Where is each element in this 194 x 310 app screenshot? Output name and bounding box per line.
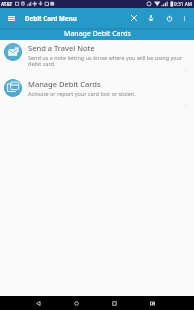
button[interactable]: Split screen: [145, 296, 159, 310]
staticText: Manage Debit Cards: [28, 79, 101, 89]
button[interactable]: Open navigation menu: [3, 8, 19, 28]
button[interactable]: Close: [127, 8, 140, 28]
button[interactable]: Voice search: [144, 8, 157, 28]
button[interactable]: Recent apps: [107, 296, 121, 310]
staticText: Send a Travel Note: [28, 43, 95, 53]
button[interactable]: Power: [163, 8, 176, 28]
staticText: AT&T: [1, 1, 13, 7]
button[interactable]: Send a Travel Note: [0, 40, 194, 75]
button[interactable]: Back: [31, 296, 45, 310]
staticText: Manage Debit Cards: [64, 29, 131, 39]
staticText: Debit Card Menu: [25, 14, 77, 22]
staticText: Send us a note letting us know where you…: [28, 54, 188, 68]
staticText: Activate or report your card lost or sto…: [28, 90, 136, 97]
button[interactable]: More options: [178, 8, 191, 28]
button[interactable]: Home: [69, 296, 83, 310]
staticText: 9:31 AM: [174, 1, 193, 8]
button[interactable]: Manage Debit Cards: [0, 75, 194, 110]
